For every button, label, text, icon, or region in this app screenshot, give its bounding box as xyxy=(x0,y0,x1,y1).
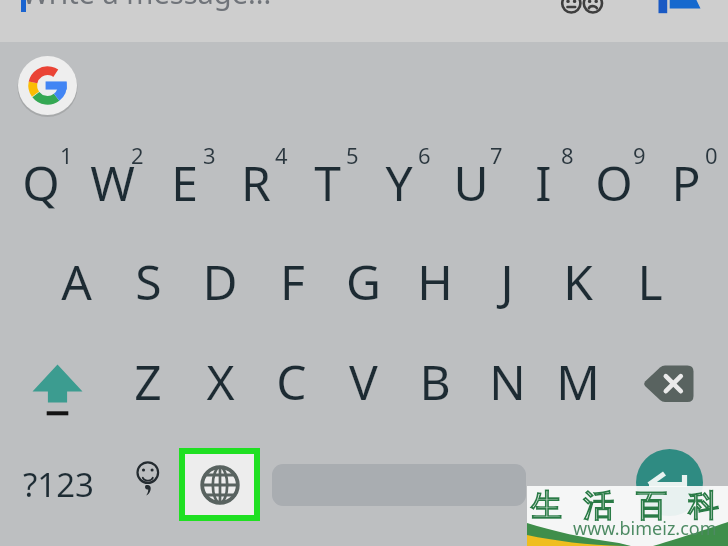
staticText: A xyxy=(61,249,92,314)
button[interactable]: Y xyxy=(363,133,435,231)
staticText: F xyxy=(280,249,305,314)
button[interactable]: J xyxy=(471,232,543,330)
button[interactable]: X xyxy=(184,332,256,430)
staticText: 0 xyxy=(705,140,718,170)
staticText: L xyxy=(637,249,663,314)
button[interactable]: B xyxy=(399,332,471,430)
staticText: Write a message... xyxy=(22,0,272,12)
staticText: O xyxy=(595,150,633,215)
button[interactable]: R xyxy=(220,133,292,231)
staticText: E xyxy=(171,150,198,215)
button[interactable]: V xyxy=(327,332,399,430)
staticText: X xyxy=(206,349,235,414)
staticText: ?123 xyxy=(23,462,94,507)
staticText: 4 xyxy=(275,140,288,170)
staticText: 9 xyxy=(633,140,646,170)
button[interactable]: Q xyxy=(5,133,77,231)
staticText: J xyxy=(500,249,514,314)
button[interactable]: M xyxy=(542,332,614,430)
staticText: K xyxy=(563,249,593,314)
staticText: 3 xyxy=(203,140,216,170)
button[interactable]: P xyxy=(650,133,722,231)
button[interactable]: Z xyxy=(112,332,184,430)
staticText: V xyxy=(349,349,378,414)
button[interactable]: ?123 xyxy=(18,449,98,519)
button[interactable]: U xyxy=(435,133,507,231)
button[interactable]: E xyxy=(148,133,220,231)
button[interactable]: Backspace xyxy=(640,360,702,408)
button[interactable]: I xyxy=(507,133,579,231)
staticText: S xyxy=(135,249,162,314)
staticText: G xyxy=(346,249,381,314)
button[interactable]: Emoji xyxy=(118,450,178,520)
staticText: P xyxy=(671,150,701,215)
button[interactable]: C xyxy=(255,332,327,430)
button[interactable]: W xyxy=(76,133,148,231)
staticText: Z xyxy=(134,349,162,414)
button[interactable]: A xyxy=(40,232,112,330)
staticText: I xyxy=(535,150,552,215)
staticText: W xyxy=(90,150,135,215)
staticText: 5 xyxy=(346,140,359,170)
staticText: C xyxy=(276,349,307,414)
staticText: 活 xyxy=(583,486,614,525)
staticText: R xyxy=(241,150,271,215)
button[interactable]: L xyxy=(614,232,686,330)
staticText: 8 xyxy=(561,140,574,170)
staticText: M xyxy=(556,349,600,414)
staticText: 生 xyxy=(531,486,562,525)
staticText: 百 xyxy=(636,486,667,525)
button[interactable]: Send xyxy=(654,0,704,16)
button[interactable]: S xyxy=(112,232,184,330)
button[interactable]: Shift xyxy=(24,358,92,420)
staticText: 科 xyxy=(688,486,719,525)
button[interactable]: Google search xyxy=(17,55,78,116)
button[interactable]: N xyxy=(471,332,543,430)
button[interactable]: T xyxy=(291,133,363,231)
staticText: N xyxy=(489,349,526,414)
staticText: 1 xyxy=(60,140,73,170)
staticText: T xyxy=(314,150,341,215)
button[interactable]: O xyxy=(578,133,650,231)
staticText: B xyxy=(419,349,451,414)
button[interactable]: D xyxy=(184,232,256,330)
button[interactable]: Enter xyxy=(636,449,703,516)
staticText: D xyxy=(202,249,238,314)
staticText: 2 xyxy=(131,140,144,170)
staticText: H xyxy=(417,249,453,314)
staticText: www.bimeiz.com xyxy=(573,516,717,541)
staticText: U xyxy=(453,150,489,215)
staticText: Q xyxy=(22,150,60,215)
button[interactable]: G xyxy=(327,232,399,330)
button[interactable]: Emoji reactions xyxy=(558,0,608,18)
button[interactable]: H xyxy=(399,232,471,330)
button[interactable]: F xyxy=(256,232,328,330)
staticText: 7 xyxy=(490,140,503,170)
staticText: Y xyxy=(385,150,413,215)
button[interactable]: Switch language xyxy=(185,454,254,515)
button[interactable]: K xyxy=(542,232,614,330)
staticText: 6 xyxy=(418,140,431,170)
